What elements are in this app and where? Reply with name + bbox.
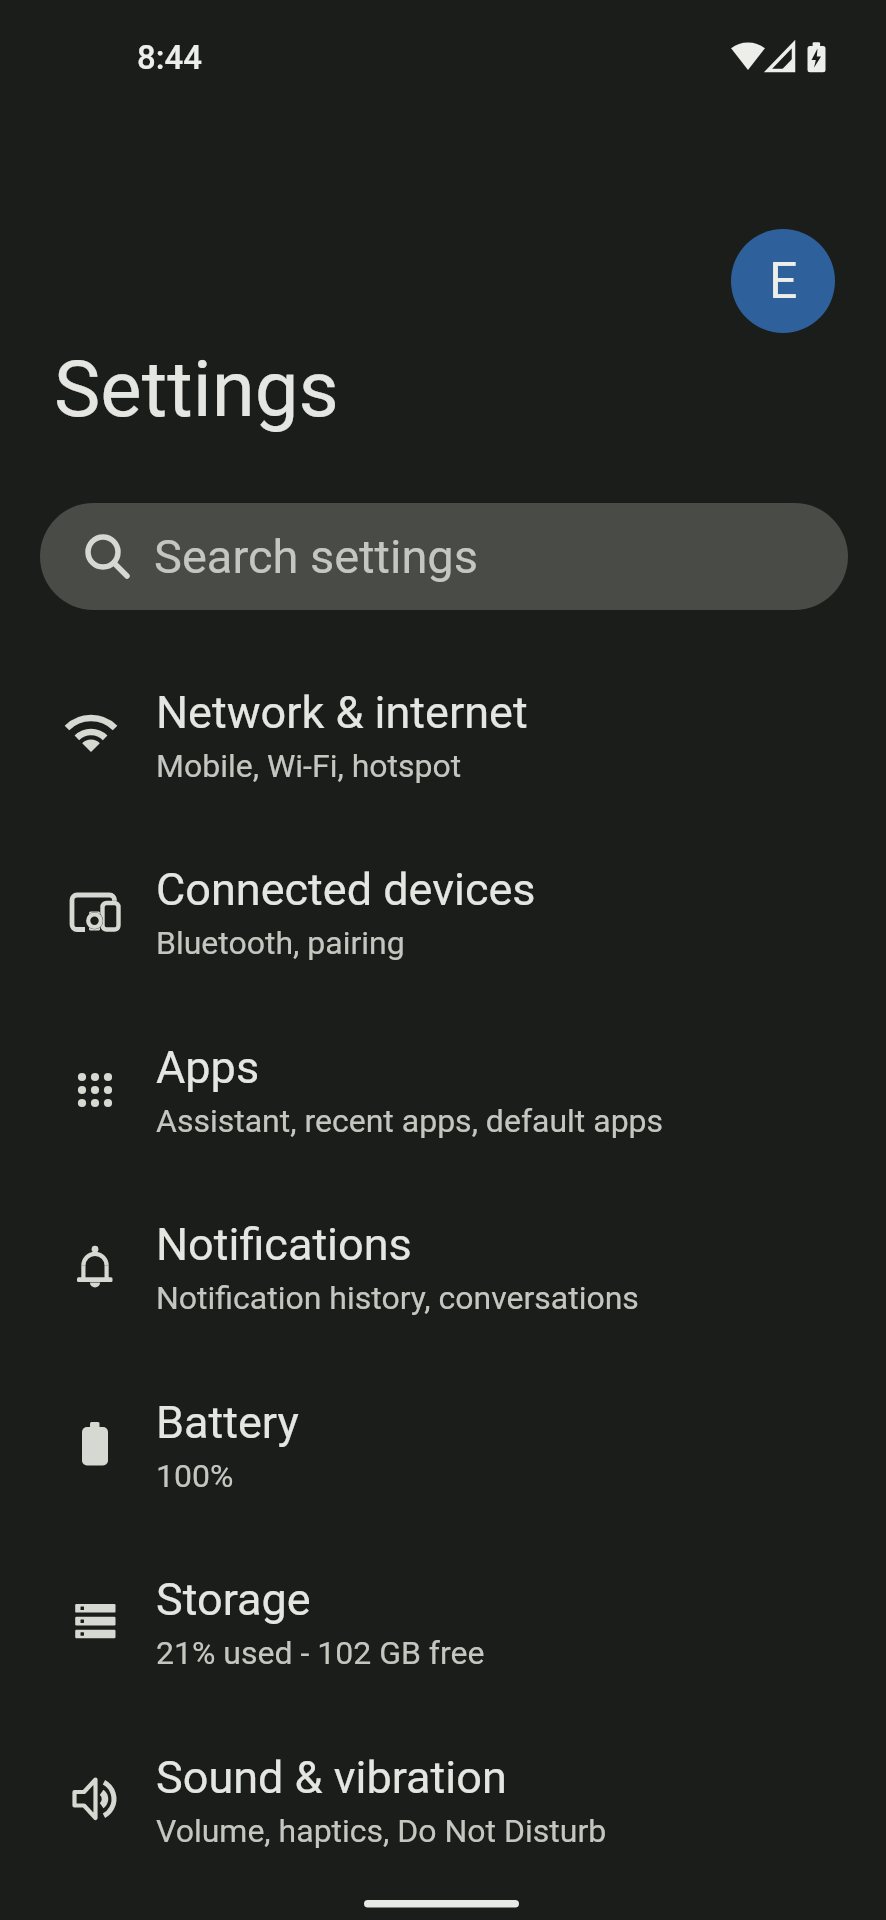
- button[interactable]: Battery: [0, 1358, 886, 1535]
- staticText: Mobile, Wi-Fi, hotspot: [156, 747, 462, 785]
- staticText: Battery: [156, 1396, 299, 1449]
- staticText: Storage: [156, 1573, 311, 1626]
- staticText: Search settings: [154, 529, 478, 584]
- staticText: E: [769, 252, 798, 311]
- button[interactable]: Storage: [0, 1535, 886, 1712]
- staticText: Bluetooth, pairing: [156, 924, 405, 962]
- staticText: Notification history, conversations: [156, 1279, 639, 1317]
- button[interactable]: Sound & vibration: [0, 1713, 886, 1890]
- button[interactable]: Network & internet: [0, 648, 886, 825]
- button[interactable]: Search settings: [40, 503, 848, 610]
- staticText: Sound & vibration: [156, 1751, 507, 1804]
- staticText: Connected devices: [156, 863, 536, 916]
- button[interactable]: Apps: [0, 1003, 886, 1180]
- button[interactable]: Notifications: [0, 1180, 886, 1357]
- button[interactable]: E: [731, 229, 835, 333]
- staticText: Volume, haptics, Do Not Disturb: [156, 1812, 607, 1850]
- staticText: Settings: [54, 344, 339, 435]
- staticText: 21% used - 102 GB free: [156, 1634, 485, 1672]
- button[interactable]: Connected devices: [0, 825, 886, 1002]
- staticText: Network & internet: [156, 686, 528, 739]
- staticText: Apps: [156, 1041, 260, 1094]
- staticText: 100%: [156, 1457, 234, 1495]
- staticText: 8:44: [137, 38, 203, 77]
- staticText: Notifications: [156, 1218, 412, 1271]
- staticText: Assistant, recent apps, default apps: [156, 1102, 664, 1140]
